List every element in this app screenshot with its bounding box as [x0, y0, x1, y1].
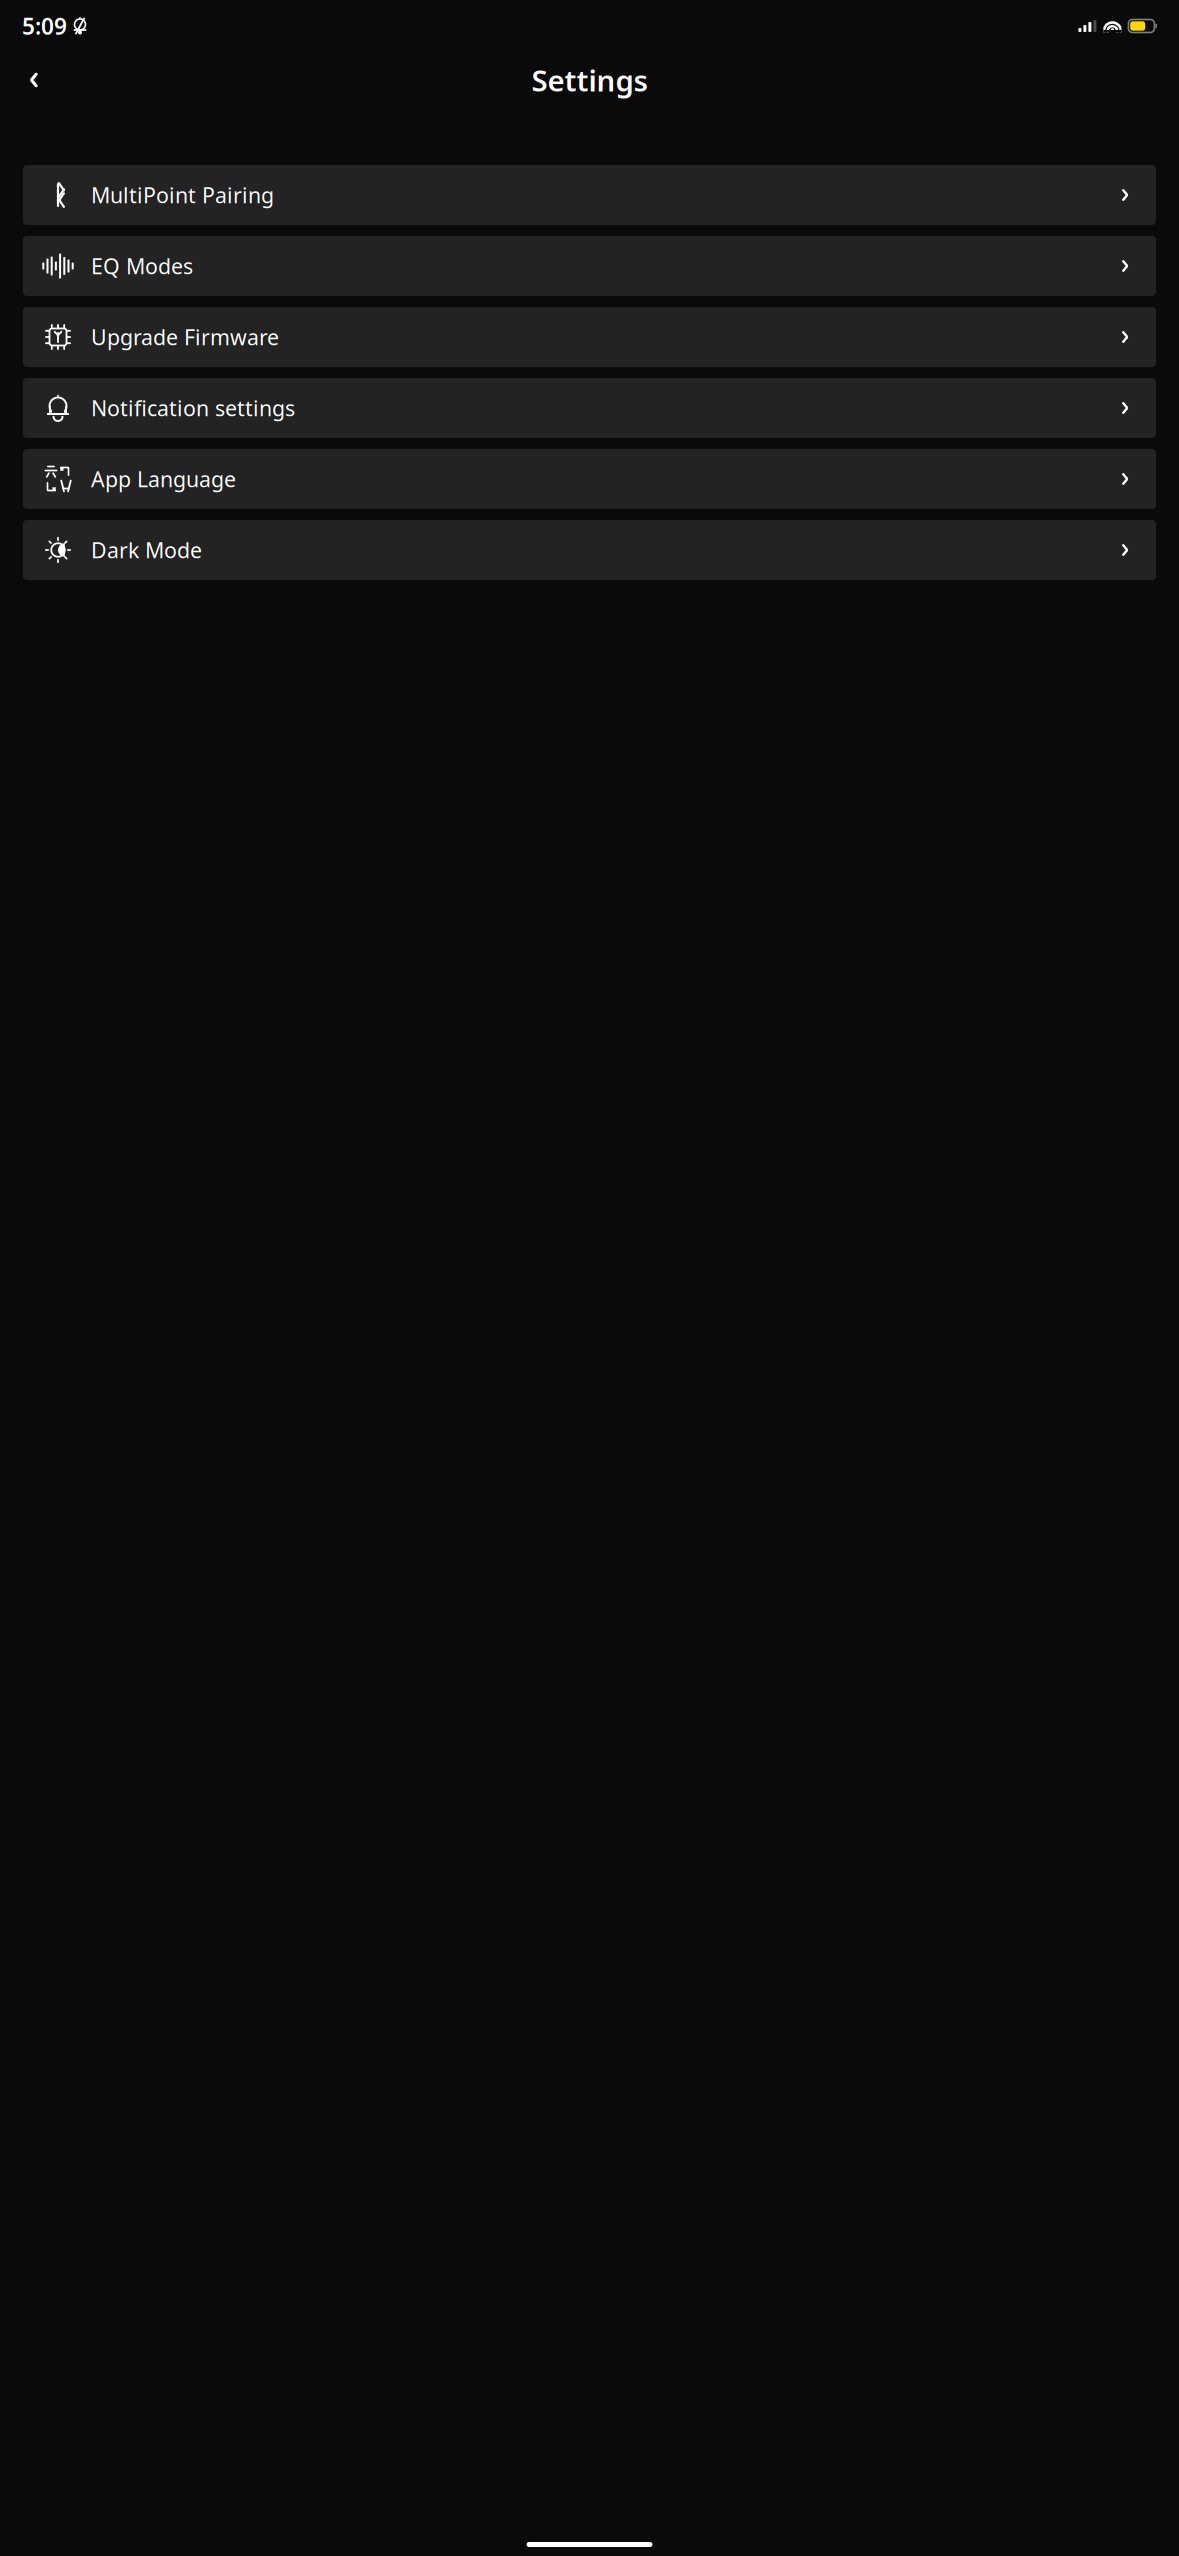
staticText: MultiPoint Pairing — [91, 181, 274, 209]
button[interactable]: MultiPoint Pairing — [23, 165, 1156, 225]
staticText: Dark Mode — [91, 536, 202, 564]
button[interactable]: Upgrade Firmware — [23, 307, 1156, 367]
staticText: EQ Modes — [91, 252, 193, 280]
button[interactable]: Notification settings — [23, 378, 1156, 438]
button[interactable]: App Language — [23, 449, 1156, 509]
button[interactable]: Dark Mode — [23, 520, 1156, 580]
staticText: Settings — [531, 60, 647, 99]
staticText: Upgrade Firmware — [91, 323, 279, 351]
staticText: Notification settings — [91, 394, 295, 422]
button[interactable]: Back — [9, 58, 53, 102]
staticText: 5:09 — [22, 11, 67, 41]
staticText: App Language — [91, 465, 236, 493]
button[interactable]: EQ Modes — [23, 236, 1156, 296]
